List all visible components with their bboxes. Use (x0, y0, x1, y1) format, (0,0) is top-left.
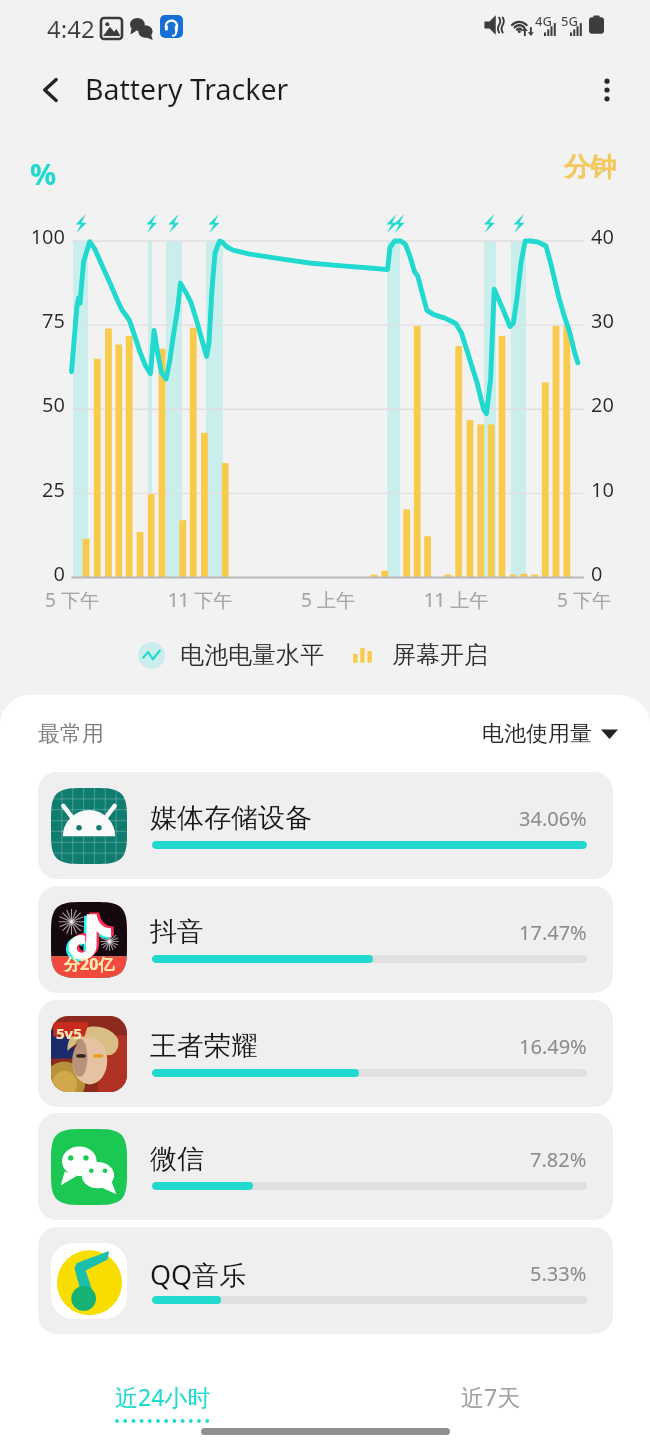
staticText: 分20亿 (64, 953, 115, 975)
staticText: QQ音乐 (150, 1256, 247, 1293)
staticText: 16.49% (519, 1033, 587, 1060)
staticText: 电池使用量 (482, 720, 592, 748)
button[interactable]: 近24小时 (96, 1381, 230, 1437)
staticText: 11 下午 (140, 587, 260, 613)
staticText: 50 (0, 391, 65, 418)
button[interactable]: 5v5 (38, 1000, 613, 1107)
staticText: 11 上午 (396, 587, 516, 613)
button[interactable]: Back (24, 63, 78, 117)
staticText: 0 (0, 560, 65, 587)
staticText: 100 (0, 223, 65, 250)
staticText: 34.06% (519, 805, 587, 832)
staticText: 4:42 (47, 12, 95, 45)
staticText: 10 (591, 476, 614, 503)
staticText: 40 (591, 223, 614, 250)
button[interactable]: 媒体存储设备 (38, 772, 613, 879)
staticText: 4G (535, 12, 552, 30)
button[interactable]: QQ音乐 (38, 1227, 613, 1334)
staticText: 30 (591, 307, 614, 334)
button[interactable]: 近7天 (424, 1381, 558, 1437)
staticText: 7.82% (530, 1146, 587, 1173)
staticText: 近24小时 (115, 1381, 211, 1412)
staticText: 近7天 (461, 1381, 521, 1412)
staticText: 5 下午 (524, 587, 644, 613)
staticText: 5v5 (56, 1023, 82, 1043)
staticText: Battery Tracker (85, 70, 289, 109)
staticText: 电池电量水平 (180, 640, 324, 670)
staticText: % (30, 154, 57, 193)
staticText: 抖音 (150, 915, 204, 949)
button[interactable]: 电池使用量 (476, 714, 624, 754)
staticText: 5 下午 (12, 587, 132, 613)
staticText: 20 (591, 391, 614, 418)
staticText: 屏幕开启 (392, 640, 488, 670)
staticText: 0 (591, 560, 603, 587)
staticText: 25 (0, 476, 65, 503)
staticText: 最常用 (38, 720, 104, 748)
staticText: 17.47% (519, 919, 587, 946)
button[interactable]: 分20亿 (38, 886, 613, 993)
staticText: 5.33% (530, 1260, 587, 1287)
staticText: 王者荣耀 (150, 1029, 258, 1063)
staticText: 微信 (150, 1142, 204, 1176)
staticText: 5G (561, 12, 578, 30)
staticText: 75 (0, 307, 65, 334)
staticText: 分钟 (564, 151, 616, 184)
staticText: 媒体存储设备 (150, 801, 312, 835)
button[interactable]: 微信 (38, 1113, 613, 1220)
button[interactable]: More options (580, 63, 634, 117)
staticText: 5 上午 (268, 587, 388, 613)
